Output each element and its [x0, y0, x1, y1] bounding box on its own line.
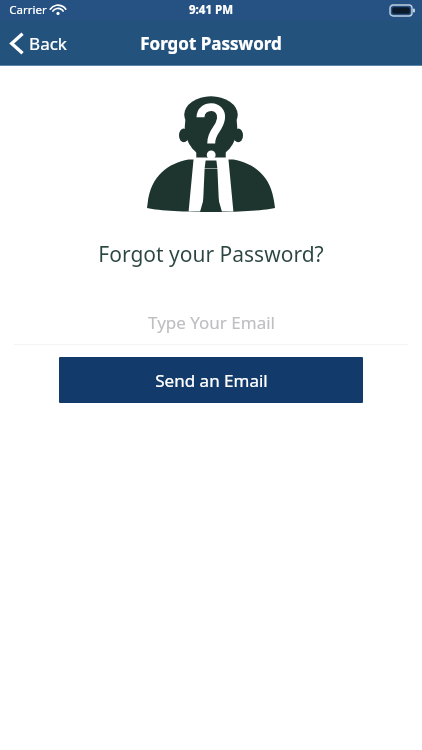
- staticText: Send an Email: [155, 369, 268, 392]
- button[interactable]: Type Your Email: [0, 300, 422, 345]
- button[interactable]: Send an Email: [59, 357, 363, 403]
- staticText: Back: [29, 32, 67, 55]
- staticText: Type Your Email: [148, 311, 275, 334]
- staticText: Carrier: [9, 2, 47, 18]
- button[interactable]: Back: [0, 20, 79, 66]
- staticText: 9:41 PM: [189, 2, 233, 18]
- staticText: Forgot Password: [140, 32, 282, 55]
- staticText: Forgot your Password?: [98, 240, 324, 269]
